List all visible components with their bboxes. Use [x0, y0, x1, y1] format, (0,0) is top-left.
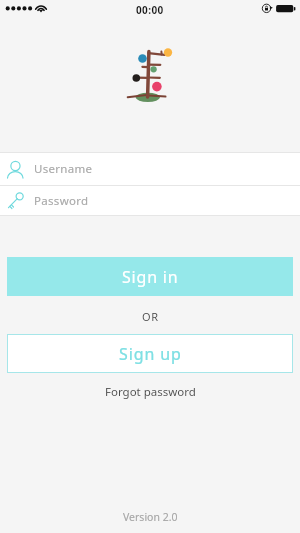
staticText: OR [142, 309, 159, 324]
staticText: Version 2.0 [123, 510, 178, 524]
button[interactable]: Username [0, 153, 300, 185]
staticText: Username [34, 161, 93, 177]
other: App logo [125, 47, 173, 104]
staticText: Forgot password [105, 384, 196, 400]
staticText: Password [34, 193, 89, 209]
staticText: Sign in [122, 266, 179, 288]
staticText: Sign up [119, 343, 182, 365]
staticText: 00:00 [136, 3, 164, 17]
button[interactable]: Forgot password [0, 381, 300, 403]
button[interactable]: Sign in [7, 257, 293, 296]
button[interactable]: Sign up [7, 334, 293, 373]
button[interactable]: Password [0, 186, 300, 215]
